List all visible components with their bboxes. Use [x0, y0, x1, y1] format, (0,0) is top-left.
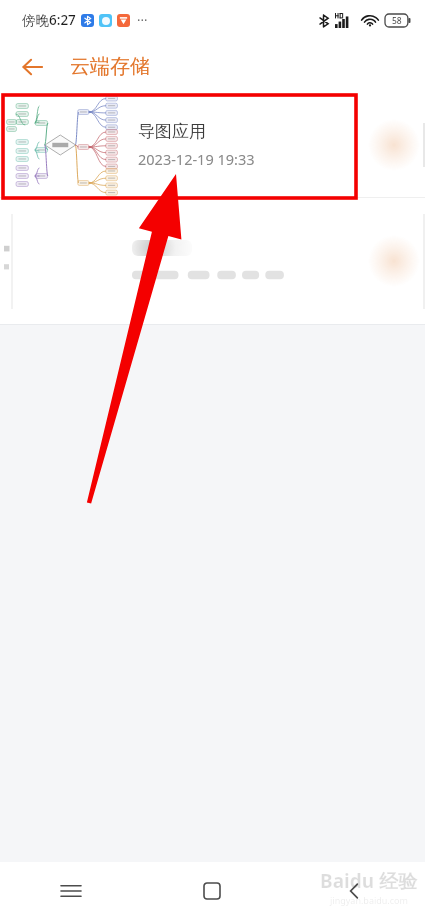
button[interactable]: Home: [141, 862, 283, 920]
staticText: ···: [137, 11, 148, 29]
button[interactable]: Cloud sync: [363, 95, 425, 195]
staticText: 2023-12-19 19:33: [138, 149, 255, 169]
staticText: 导图应用: [138, 121, 206, 142]
button[interactable]: Back: [12, 46, 54, 88]
button[interactable]: Recents: [0, 862, 141, 920]
staticText: jingyan.baidu.com: [330, 894, 408, 906]
staticText: Baidu 经验: [320, 868, 417, 894]
staticText: 58: [392, 15, 402, 27]
staticText: 云端存储: [70, 54, 150, 79]
staticText: 傍晚6:27: [22, 11, 76, 29]
button[interactable]: Back: [283, 862, 425, 920]
button[interactable]: [0, 198, 425, 324]
button[interactable]: 导图应用: [0, 93, 425, 197]
